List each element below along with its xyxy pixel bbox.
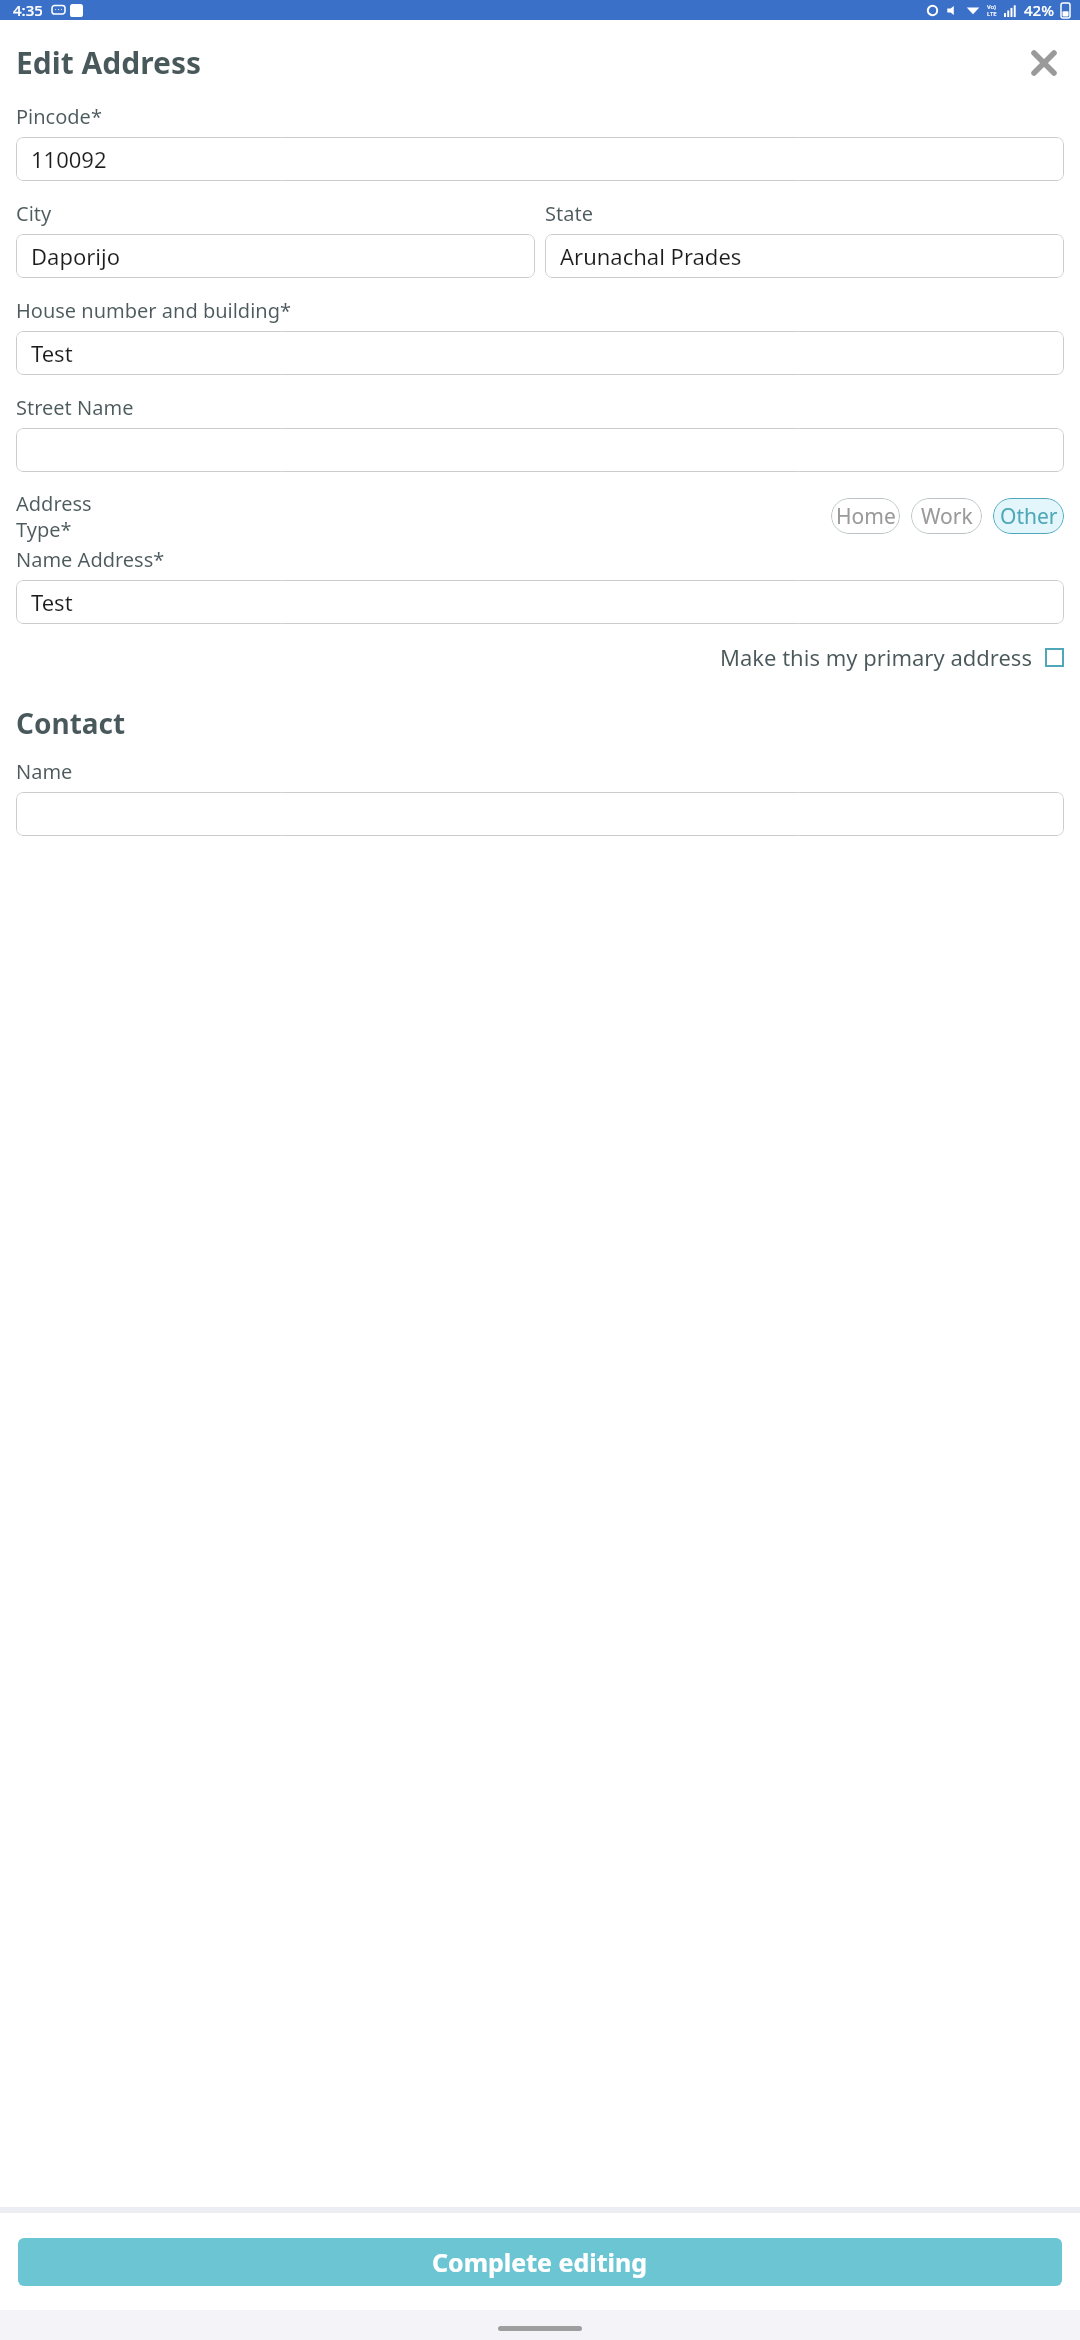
staticText: Name (16, 758, 73, 785)
button[interactable]: Arunachal Prades (545, 234, 1064, 278)
staticText: Name Address* (16, 546, 165, 573)
button[interactable]: Work (911, 498, 982, 534)
button[interactable] (16, 428, 1064, 472)
button[interactable]: 110092 (16, 137, 1064, 181)
staticText: Test (31, 338, 73, 368)
staticText: 110092 (31, 144, 107, 174)
staticText: Vo) LTE (987, 3, 997, 17)
staticText: 42% (1024, 0, 1054, 20)
staticText: Other (1000, 502, 1058, 531)
staticText: Edit Address (16, 42, 202, 83)
button[interactable]: Test (16, 580, 1064, 624)
button[interactable]: Test (16, 331, 1064, 375)
button[interactable]: Complete editing (18, 2238, 1062, 2286)
button[interactable]: Make this my primary address (16, 642, 1064, 672)
button[interactable]: Close (1024, 43, 1064, 83)
staticText: Home (836, 502, 896, 531)
staticText: Daporijo (31, 241, 120, 271)
button[interactable]: Other (993, 498, 1064, 534)
staticText: Address Type* (16, 490, 92, 542)
staticText: Work (921, 502, 973, 531)
button[interactable]: Daporijo (16, 234, 535, 278)
button[interactable] (16, 792, 1064, 836)
staticText: Complete editing (432, 2245, 648, 2279)
staticText: State (545, 200, 593, 227)
staticText: Arunachal Prades (560, 241, 742, 271)
staticText: 4:35 (13, 0, 43, 20)
staticText: Street Name (16, 394, 134, 421)
staticText: City (16, 200, 52, 227)
button[interactable]: Home (831, 498, 900, 534)
staticText: Contact (16, 704, 126, 742)
staticText: Test (31, 587, 73, 617)
staticText: House number and building* (16, 297, 291, 324)
staticText: Make this my primary address (720, 642, 1032, 672)
staticText: Pincode* (16, 103, 102, 130)
